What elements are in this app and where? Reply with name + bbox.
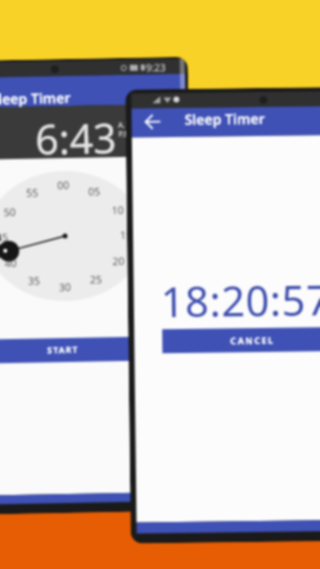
staticText: CANCEL: [230, 334, 275, 346]
button[interactable]: Sleep Timer: [0, 74, 185, 108]
staticText: 25: [90, 272, 103, 286]
staticText: 10: [111, 203, 125, 217]
staticText: Sleep Timer: [0, 88, 71, 108]
staticText: 30: [59, 280, 72, 294]
button[interactable]: Sleep Timer: [131, 105, 320, 138]
staticText: P.M.: [118, 128, 134, 139]
staticText: START: [47, 344, 79, 356]
staticText: 9:23: [146, 60, 166, 74]
staticText: 00: [57, 178, 70, 192]
staticText: 20: [112, 254, 126, 268]
staticText: A.M.: [118, 119, 135, 130]
staticText: 45: [0, 230, 9, 244]
staticText: 40: [4, 256, 18, 270]
staticText: Sleep Timer: [184, 109, 266, 129]
staticText: 6:43: [35, 109, 118, 163]
staticText: 55: [26, 185, 39, 200]
staticText: 18:20:57: [160, 271, 320, 330]
staticText: 05: [88, 184, 101, 199]
staticText: 15: [120, 228, 133, 242]
staticText: 50: [3, 205, 17, 219]
button[interactable]: CANCEL: [162, 327, 320, 353]
staticText: 35: [28, 273, 41, 288]
button[interactable]: START: [0, 336, 190, 364]
